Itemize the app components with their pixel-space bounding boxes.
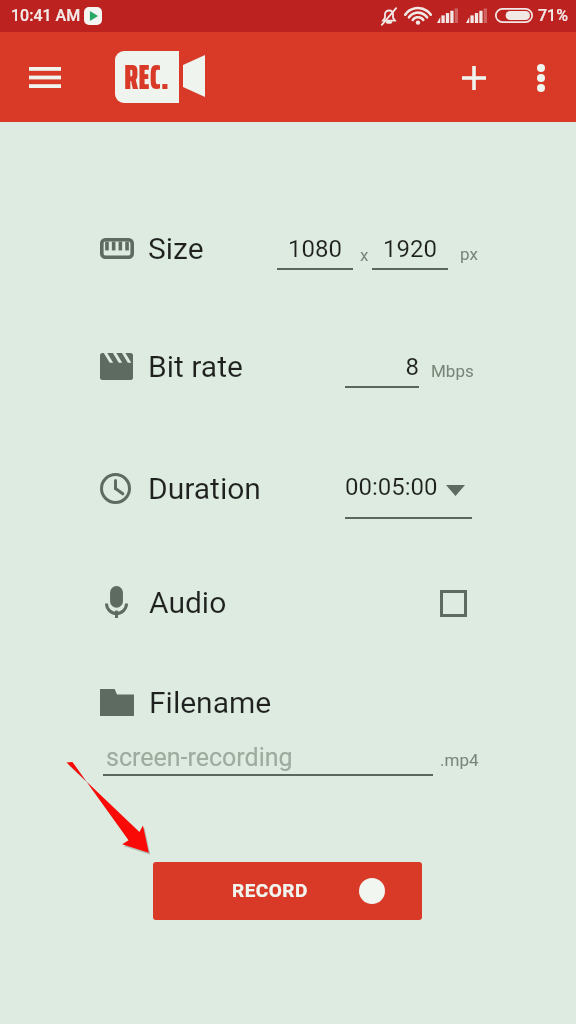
staticText: Bit rate xyxy=(148,349,243,384)
button[interactable]: Filename xyxy=(100,676,272,728)
button[interactable]: Duration xyxy=(100,460,261,516)
staticText: Duration xyxy=(148,471,261,506)
button[interactable]: Audio xyxy=(100,574,227,630)
staticText: Mbps xyxy=(431,361,474,381)
button[interactable]: Bit rate xyxy=(100,338,243,394)
button[interactable]: Size xyxy=(100,220,204,276)
button[interactable]: RECORD xyxy=(153,862,422,920)
button[interactable]: 1920 xyxy=(372,235,448,276)
staticText: 71% xyxy=(538,6,568,25)
staticText: Size xyxy=(148,231,204,266)
staticText: RECORD xyxy=(232,879,308,901)
staticText: 1080 xyxy=(277,235,353,263)
staticText: x xyxy=(360,245,369,265)
button[interactable]: screen-recording xyxy=(103,738,433,778)
staticText: Filename xyxy=(149,685,272,720)
staticText: 1920 xyxy=(372,235,448,263)
button[interactable]: 1080 xyxy=(277,235,353,276)
button[interactable]: 8 xyxy=(345,353,419,394)
staticText: 8 xyxy=(345,353,419,381)
staticText: px xyxy=(460,244,478,264)
staticText: REC. xyxy=(124,51,169,102)
staticText: .mp4 xyxy=(440,750,479,770)
staticText: 00:05:00 xyxy=(345,473,438,501)
staticText: 10:41 AM xyxy=(11,6,81,25)
button[interactable]: Open navigation menu xyxy=(23,55,67,99)
button[interactable]: More options xyxy=(518,55,563,100)
staticText: screen-recording xyxy=(106,743,293,772)
button[interactable]: Audio enabled checkbox xyxy=(431,581,476,626)
staticText: Audio xyxy=(149,585,227,620)
button[interactable]: Add xyxy=(451,55,496,100)
button[interactable]: Duration selector xyxy=(345,468,472,520)
